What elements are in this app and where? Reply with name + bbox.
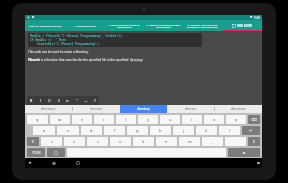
staticText: 4. CREATE AND REMOVE FILES DIRECTORIES: [145, 23, 182, 29]
button[interactable]: e: [72, 115, 92, 124]
button[interactable]: b: [133, 137, 154, 146]
button[interactable]: u: [160, 115, 180, 124]
button[interactable]: w: [50, 115, 70, 124]
staticText: If NewDir <> '' Then: [30, 38, 67, 42]
staticText: ": [76, 98, 78, 103]
button[interactable]: p: [226, 115, 246, 124]
button[interactable]: s: [57, 126, 79, 135]
button[interactable]: l: [219, 126, 240, 135]
staticText: director: [185, 107, 197, 111]
button[interactable]: z: [41, 137, 62, 146]
staticText: m: [188, 139, 192, 144]
button[interactable]: c: [87, 137, 108, 146]
staticText: directory: [130, 58, 143, 62]
button[interactable]: g: [127, 126, 148, 135]
button[interactable]: d: [81, 126, 102, 135]
staticText: j: [183, 128, 185, 133]
button[interactable]: Hide keyboard: [228, 148, 260, 157]
button[interactable]: t: [116, 115, 136, 124]
staticText: v: [119, 139, 122, 144]
button[interactable]: Quote: [74, 98, 79, 103]
button[interactable]: Strikethrough: [56, 98, 61, 103]
button[interactable]: m: [179, 137, 200, 146]
button[interactable]: Notes: [222, 20, 262, 31]
button[interactable]: Back: [25, 158, 35, 168]
button[interactable]: Emoji: [47, 148, 65, 157]
button[interactable]: q: [27, 115, 48, 124]
button[interactable]: Symbols: [27, 148, 45, 157]
staticText: directors: [90, 107, 103, 111]
button[interactable]: directors: [73, 105, 120, 113]
button[interactable]: 5. CLASSIC : ACTIONS FOR NAVIGATE A FILE…: [183, 20, 222, 31]
staticText: 5. CLASSIC : ACTIONS FOR NAVIGATE A FILE…: [184, 23, 221, 29]
staticText: HOW TO NAVIGATE THE FILE: [29, 24, 62, 27]
button[interactable]: n: [156, 137, 177, 146]
staticText: t: [125, 117, 127, 122]
button[interactable]: k: [196, 126, 217, 135]
button[interactable]: Recents: [73, 158, 83, 168]
staticText: ?123: [32, 150, 41, 155]
staticText: This code can be used to create a direct…: [28, 50, 89, 54]
staticText: 2. DELETING FILES: [75, 24, 96, 27]
button[interactable]: Shift: [248, 137, 260, 146]
button[interactable]: HOW TO NAVIGATE THE FILE: [25, 20, 65, 31]
button[interactable]: director: [167, 105, 214, 113]
staticText: 9:28: [254, 16, 260, 20]
staticText: ≡: [66, 99, 69, 103]
staticText: FSearch: [28, 58, 40, 62]
button[interactable]: 2. DELETING FILES: [65, 20, 105, 31]
staticText: b: [142, 139, 145, 144]
staticText: e: [81, 117, 84, 122]
button[interactable]: f: [104, 126, 125, 135]
staticText: s: [67, 128, 69, 133]
staticText: r: [103, 117, 105, 122]
button[interactable]: x: [64, 137, 85, 146]
staticText: g: [136, 128, 139, 133]
staticText: c: [97, 139, 99, 144]
button[interactable]: v: [110, 137, 131, 146]
staticText: ⇧: [252, 139, 256, 144]
staticText: l: [229, 128, 231, 133]
staticText: o: [213, 117, 216, 122]
staticText: TAKE NOTES: [237, 24, 253, 28]
button[interactable]: Underline: [47, 98, 52, 103]
button[interactable]: Italic: [38, 98, 43, 103]
staticText: ⌫: [251, 117, 257, 122]
staticText: u: [169, 117, 172, 122]
button[interactable]: 4. CREATE AND REMOVE FILES DIRECTORIES: [144, 20, 183, 31]
button[interactable]: Divider: [83, 98, 88, 103]
button[interactable]: directories: [215, 105, 262, 113]
button[interactable]: directory: [120, 105, 167, 113]
staticText: B: [30, 98, 33, 103]
button[interactable]: i: [182, 115, 202, 124]
staticText: I: [40, 98, 42, 103]
button[interactable]: Keyboard indicator: [254, 159, 262, 167]
button[interactable]: Home: [49, 158, 59, 168]
button[interactable]: 3. THE TSCLIENT COMPLEX DIRECTIONS: [105, 20, 144, 31]
staticText: NewDir = FSearch('C:\Pascal Programming'…: [30, 34, 124, 38]
button[interactable]: Bold: [29, 98, 34, 103]
button[interactable]: Enter: [242, 126, 260, 135]
button[interactable]: h: [150, 126, 171, 135]
button[interactable]: Shift: [27, 137, 39, 146]
button[interactable]: Text color: [92, 98, 97, 103]
staticText: q: [36, 117, 39, 122]
button[interactable]: y: [138, 115, 158, 124]
staticText: n: [165, 139, 168, 144]
button[interactable]: r: [94, 115, 114, 124]
button[interactable]: o: [204, 115, 224, 124]
staticText: z: [51, 139, 53, 144]
button[interactable]: Align: [65, 98, 70, 103]
staticText: ↵: [249, 128, 253, 133]
button[interactable]: a: [33, 126, 55, 135]
button[interactable]: j: [173, 126, 194, 135]
staticText: p: [235, 117, 238, 122]
staticText: directory's: [41, 107, 56, 111]
other: Notes: [232, 24, 236, 28]
button[interactable]: Backspace: [248, 115, 260, 124]
staticText: f: [114, 128, 116, 133]
button[interactable]: directory's: [25, 105, 72, 113]
button[interactable]: ,: [202, 137, 223, 146]
